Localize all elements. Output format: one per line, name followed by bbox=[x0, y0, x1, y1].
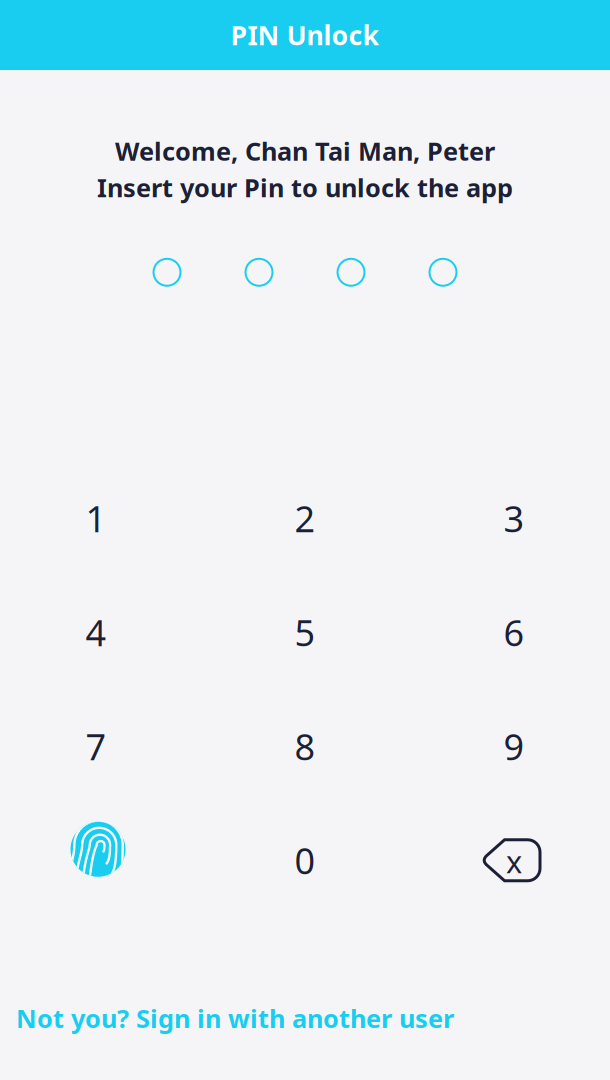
staticText: 7 bbox=[85, 722, 106, 770]
staticText: 3 bbox=[503, 494, 524, 542]
staticText: 8 bbox=[294, 722, 315, 770]
staticText: PIN Unlock bbox=[230, 17, 379, 53]
button[interactable]: 4 bbox=[26, 575, 166, 689]
staticText: 5 bbox=[294, 608, 315, 656]
staticText: 2 bbox=[294, 494, 315, 542]
button[interactable]: 0 bbox=[235, 803, 375, 917]
staticText: Insert your Pin to unlock the app bbox=[97, 171, 513, 204]
staticText: 6 bbox=[503, 608, 524, 656]
staticText: 9 bbox=[503, 722, 524, 770]
staticText: x bbox=[506, 841, 522, 882]
button[interactable]: Unlock with fingerprint bbox=[26, 803, 166, 917]
staticText: 4 bbox=[85, 608, 106, 656]
button[interactable]: 6 bbox=[444, 575, 584, 689]
button[interactable]: Not you? Sign in with another user bbox=[16, 1001, 454, 1035]
staticText: Welcome, Chan Tai Man, Peter bbox=[115, 134, 495, 168]
staticText: Not you? Sign in with another user bbox=[16, 1001, 454, 1035]
staticText: 0 bbox=[294, 836, 315, 884]
button[interactable]: 8 bbox=[235, 689, 375, 803]
button[interactable]: 5 bbox=[235, 575, 375, 689]
button[interactable]: 3 bbox=[444, 461, 584, 575]
button[interactable]: 2 bbox=[235, 461, 375, 575]
button[interactable]: 1 bbox=[26, 461, 166, 575]
button[interactable]: 7 bbox=[26, 689, 166, 803]
staticText: 1 bbox=[85, 494, 106, 542]
button[interactable]: 9 bbox=[444, 689, 584, 803]
button[interactable]: Delete bbox=[444, 803, 584, 917]
